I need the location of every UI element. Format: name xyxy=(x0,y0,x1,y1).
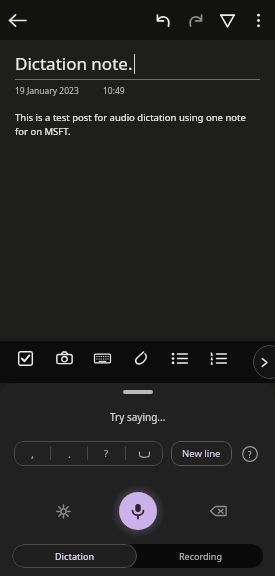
button[interactable]: New line xyxy=(171,441,232,466)
button[interactable]: Attach file xyxy=(124,341,158,375)
button[interactable]: More options xyxy=(243,0,273,40)
button[interactable]: Insert . xyxy=(51,441,87,466)
button[interactable]: Highlighter xyxy=(211,0,243,40)
staticText: . xyxy=(68,446,71,461)
button[interactable]: Recording xyxy=(137,544,263,568)
button[interactable]: Undo xyxy=(147,0,179,40)
button[interactable]: More tools xyxy=(253,345,275,379)
button[interactable]: Help xyxy=(239,443,261,465)
staticText: Dictation xyxy=(55,550,95,562)
button[interactable]: Microphone xyxy=(119,492,157,530)
button[interactable]: Keyboard xyxy=(85,341,119,375)
button[interactable]: Insert _ xyxy=(126,441,163,466)
button[interactable]: Checklist xyxy=(8,341,42,375)
button[interactable]: Camera xyxy=(47,341,81,375)
staticText: , xyxy=(31,446,34,461)
staticText: 19 January 2023 xyxy=(15,85,79,97)
staticText: ? xyxy=(104,447,109,460)
button[interactable]: Back xyxy=(0,0,34,40)
staticText: 10:49 xyxy=(103,85,125,97)
staticText: This is a test post for audio dictation … xyxy=(15,111,260,138)
button[interactable]: Redo xyxy=(179,0,211,40)
staticText: Recording xyxy=(179,550,222,562)
button[interactable]: Insert , xyxy=(14,441,50,466)
button[interactable]: Settings xyxy=(48,496,78,526)
button[interactable]: Dictation xyxy=(12,544,137,568)
button[interactable]: Bulleted list xyxy=(162,341,196,375)
staticText: ? xyxy=(248,449,252,460)
staticText: Try saying... xyxy=(110,410,166,424)
staticText: Dictation note. xyxy=(15,52,133,75)
button[interactable]: Numbered list xyxy=(201,341,235,375)
button[interactable]: Backspace xyxy=(203,496,233,526)
button[interactable]: Insert ? xyxy=(88,441,125,466)
staticText: New line xyxy=(182,447,221,460)
